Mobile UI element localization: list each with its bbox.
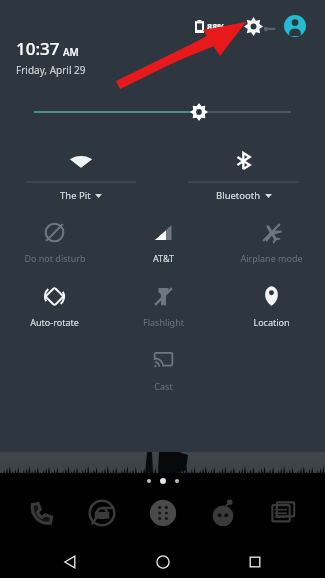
button[interactable]: AT&T (109, 216, 217, 266)
staticText: The Pit (60, 189, 91, 202)
button[interactable]: Reddit (205, 495, 241, 531)
staticText: Friday, April 29 (16, 63, 86, 77)
button[interactable]: Bluetooth (162, 145, 325, 202)
button[interactable]: User profile (284, 15, 306, 37)
button[interactable]: Auto-rotate (0, 280, 109, 330)
staticText: Bluetooth (216, 189, 261, 202)
button[interactable]: Settings (240, 13, 266, 39)
button[interactable]: Home (141, 545, 185, 578)
staticText: AM (63, 45, 79, 59)
button[interactable]: The Pit (0, 145, 162, 202)
staticText: Auto-rotate (30, 316, 79, 328)
button[interactable]: Flashlight (109, 280, 217, 330)
staticText: 10:37 (16, 37, 60, 60)
button[interactable]: Cast (109, 344, 217, 394)
button[interactable]: Airplane mode (217, 216, 325, 266)
staticText: AT&T (153, 252, 174, 264)
button[interactable]: Messages (265, 495, 301, 531)
staticText: Do not disturb (24, 252, 86, 264)
staticText: Airplane mode (240, 252, 303, 264)
button[interactable]: Location (217, 280, 325, 330)
button[interactable]: Phone (24, 495, 60, 531)
button[interactable]: Recent apps (233, 545, 277, 578)
button[interactable]: Brightness (0, 95, 325, 129)
button[interactable]: Back (48, 545, 92, 578)
staticText: Location (253, 316, 290, 328)
staticText: Flashlight (143, 316, 184, 328)
button[interactable]: All apps (145, 495, 181, 531)
staticText: Cast (154, 380, 173, 392)
staticText: 88% (207, 20, 226, 32)
button[interactable]: Browser (84, 495, 120, 531)
button[interactable]: Do not disturb (0, 216, 109, 266)
